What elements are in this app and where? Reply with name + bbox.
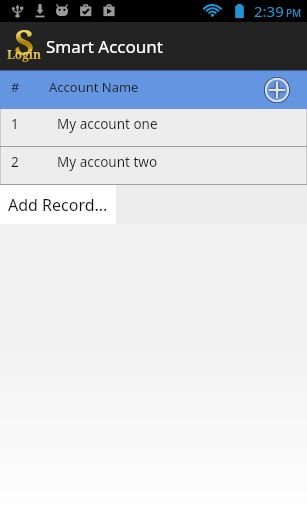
staticText: My account two [57, 153, 158, 171]
staticText: # [11, 78, 20, 96]
staticText: S [4, 19, 44, 55]
staticText: Smart Account [46, 35, 163, 58]
staticText: 2 [11, 153, 19, 171]
staticText: 2:39 [254, 1, 284, 21]
staticText: Add Record... [8, 194, 108, 216]
staticText: Account Name [49, 78, 139, 96]
button[interactable]: # [0, 70, 307, 109]
staticText: Login [4, 46, 44, 62]
staticText: PM [286, 6, 302, 20]
button[interactable]: 2 [0, 147, 307, 184]
button[interactable]: Add account [265, 78, 289, 102]
button[interactable]: Add Record... [0, 185, 116, 224]
staticText: My account one [57, 115, 158, 133]
staticText: 1 [11, 115, 19, 133]
button[interactable]: 1 [0, 109, 307, 146]
